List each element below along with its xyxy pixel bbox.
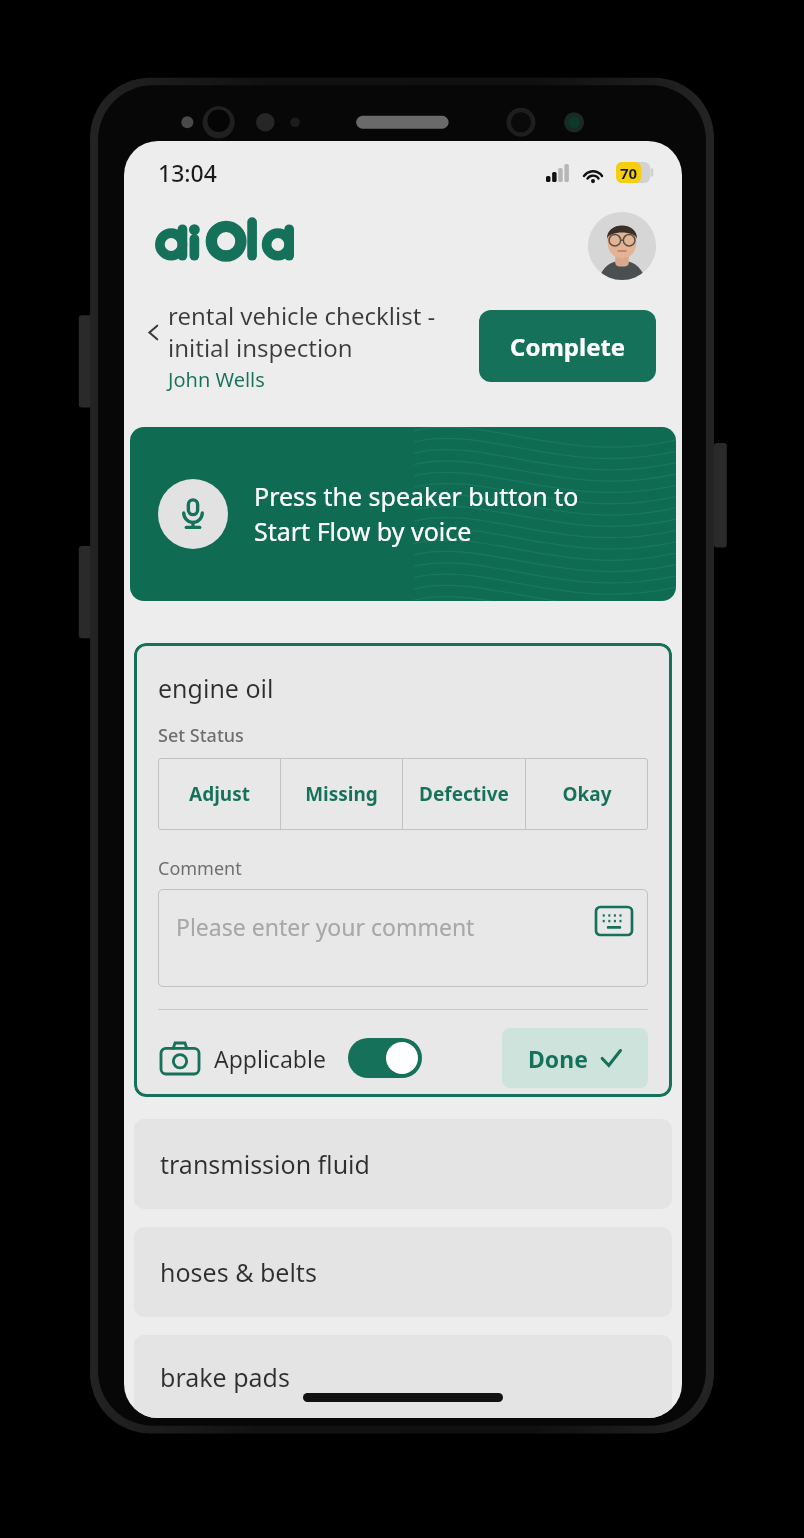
button[interactable]: Applicable toggle — [348, 1038, 422, 1078]
button[interactable]: engine oil — [134, 643, 672, 1097]
staticText: brake pads — [160, 1360, 290, 1394]
button[interactable]: Okay — [525, 758, 648, 830]
button[interactable]: brake pads — [134, 1335, 672, 1418]
staticText: Defective — [419, 781, 509, 807]
button[interactable]: Start voice flow — [130, 427, 676, 601]
button[interactable]: Complete — [479, 310, 656, 382]
staticText: Please enter your comment — [176, 911, 475, 942]
staticText: Missing — [305, 781, 378, 807]
staticText: transmission fluid — [160, 1147, 370, 1181]
staticText: engine oil — [158, 671, 274, 705]
staticText: 13:04 — [158, 157, 217, 188]
staticText: Comment — [158, 856, 242, 881]
button[interactable]: Keyboard — [596, 907, 632, 935]
staticText: Complete — [510, 330, 626, 363]
button[interactable]: transmission fluid — [134, 1119, 672, 1209]
button[interactable]: Start voice flow — [158, 479, 228, 549]
staticText: Adjust — [189, 781, 250, 807]
button[interactable]: Done — [502, 1028, 648, 1088]
staticText: 70 — [620, 163, 638, 183]
button[interactable]: hoses & belts — [134, 1227, 672, 1317]
staticText: John Wells — [168, 366, 265, 393]
staticText: rental vehicle checklist - initial inspe… — [168, 299, 473, 364]
button[interactable]: Adjust — [158, 758, 280, 830]
button[interactable]: Profile — [588, 212, 656, 280]
staticText: Press the speaker button to Start Flow b… — [254, 479, 579, 549]
staticText: Set Status — [158, 723, 244, 748]
button[interactable]: Missing — [280, 758, 402, 830]
button[interactable]: Add photo — [158, 1036, 202, 1080]
staticText: hoses & belts — [160, 1255, 317, 1289]
staticText: Applicable — [214, 1043, 326, 1074]
staticText: Okay — [562, 781, 612, 807]
button[interactable]: Defective — [402, 758, 525, 830]
button[interactable]: Back — [138, 317, 168, 347]
button[interactable]: Please enter your comment — [158, 889, 648, 987]
staticText: Done — [528, 1043, 588, 1074]
